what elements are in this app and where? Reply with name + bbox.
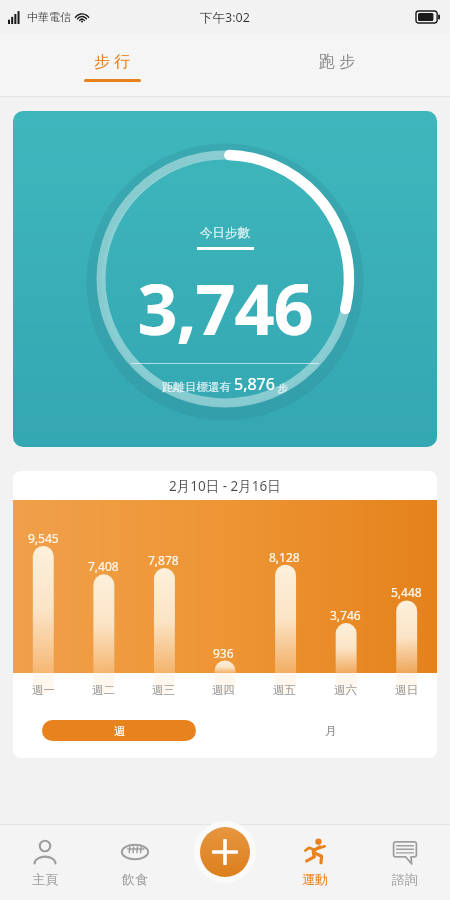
staticText: 936: [213, 645, 234, 661]
button[interactable]: Add: [194, 821, 256, 883]
button[interactable]: 運動: [270, 824, 360, 900]
staticText: 3,746: [137, 260, 313, 355]
staticText: 運動: [302, 871, 328, 887]
staticText: 週五: [273, 683, 296, 697]
staticText: 週六: [334, 683, 357, 697]
button[interactable]: 飲食: [90, 824, 180, 900]
staticText: 跑 步: [319, 50, 356, 72]
staticText: 2月10日 - 2月16日: [169, 477, 281, 495]
staticText: 週一: [32, 683, 55, 697]
staticText: 週三: [152, 683, 175, 697]
staticText: 中華電信: [27, 10, 71, 24]
staticText: 諮詢: [392, 871, 418, 887]
staticText: 週二: [92, 683, 115, 697]
staticText: 5,448: [391, 584, 422, 600]
button[interactable]: 月: [225, 720, 437, 741]
staticText: 月: [325, 723, 337, 738]
staticText: 飲食: [122, 871, 148, 887]
staticText: 步 行: [94, 50, 131, 72]
staticText: 距離目標還有: [162, 379, 234, 395]
staticText: 週: [114, 724, 125, 738]
staticText: 8,128: [269, 549, 300, 565]
button[interactable]: 今日步數: [13, 111, 437, 447]
staticText: 步: [275, 381, 289, 395]
staticText: 週日: [395, 683, 418, 697]
button[interactable]: 諮詢: [360, 824, 450, 900]
staticText: 7,878: [148, 552, 179, 568]
staticText: 主頁: [32, 871, 58, 887]
staticText: 下午3:02: [200, 9, 250, 26]
staticText: 7,408: [88, 558, 119, 574]
button[interactable]: 週: [42, 720, 196, 741]
staticText: 今日步數: [200, 225, 250, 241]
button[interactable]: 跑 步: [225, 34, 450, 97]
staticText: 週四: [212, 683, 235, 697]
staticText: 9,545: [28, 530, 59, 546]
button[interactable]: 主頁: [0, 824, 90, 900]
button[interactable]: 步 行: [0, 34, 225, 97]
staticText: 3,746: [330, 607, 361, 623]
staticText: 5,876: [234, 373, 275, 395]
